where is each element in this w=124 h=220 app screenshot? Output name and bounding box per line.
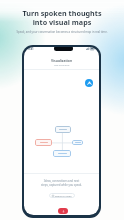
staticText: Ideas, connections and next steps, captu… xyxy=(41,179,82,187)
staticText: Ready to listen xyxy=(55,194,72,197)
staticText: Speak, and your conversation becomes a s… xyxy=(16,30,108,34)
staticText: 9:41 xyxy=(28,47,34,51)
staticText: Turn spoken thoughts into visual maps xyxy=(22,8,102,27)
button[interactable] xyxy=(55,126,71,133)
button[interactable]: Share map xyxy=(85,79,93,87)
button[interactable]: Ready to listen xyxy=(52,193,72,198)
button[interactable]: Start recording xyxy=(58,208,68,214)
staticText: Visualization xyxy=(51,58,73,63)
staticText: Live structure xyxy=(54,63,70,66)
button[interactable] xyxy=(72,140,83,145)
button[interactable] xyxy=(53,150,71,157)
button[interactable] xyxy=(35,139,52,146)
